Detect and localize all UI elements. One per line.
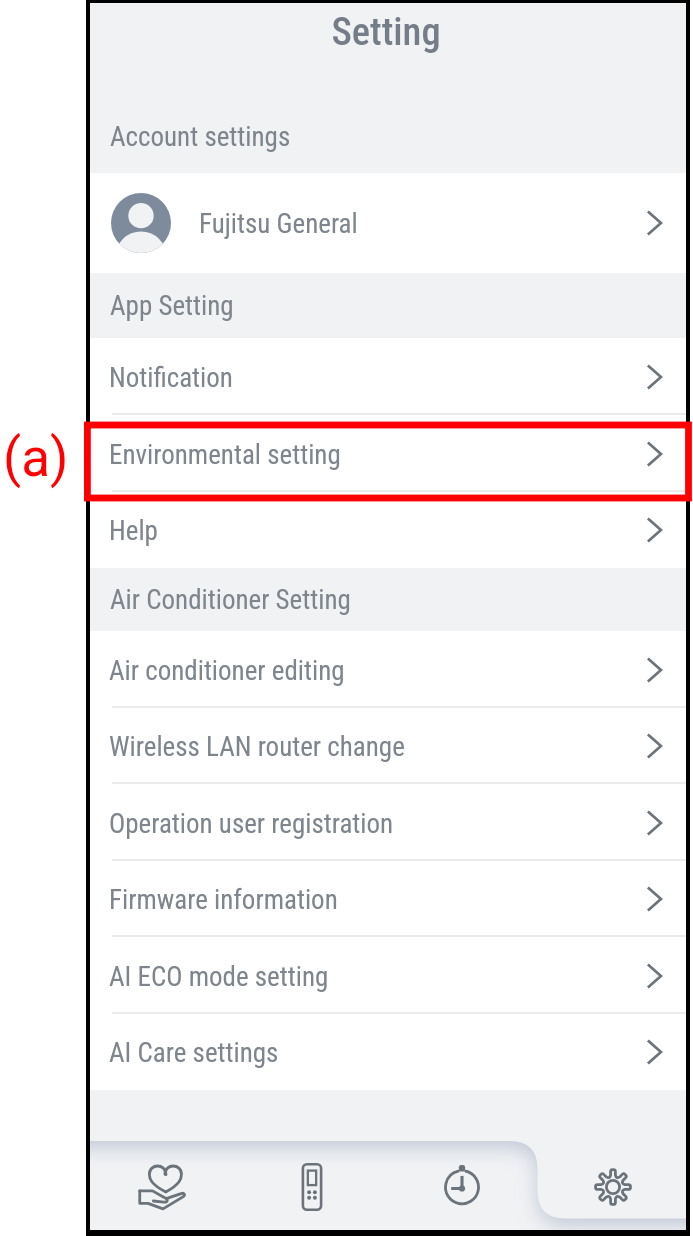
staticText: Firmware information <box>109 884 338 916</box>
button[interactable]: Notification <box>90 338 686 415</box>
staticText: Notification <box>109 362 233 394</box>
button[interactable]: Remote control <box>239 1141 388 1230</box>
button[interactable]: Fujitsu General <box>90 173 686 273</box>
staticText: Wireless LAN router change <box>109 731 405 763</box>
button[interactable]: Air conditioner editing <box>90 631 686 708</box>
button[interactable]: Firmware information <box>90 861 686 937</box>
button[interactable]: Wireless LAN router change <box>90 708 686 784</box>
staticText: AI Care settings <box>109 1037 279 1069</box>
staticText: Help <box>109 515 158 547</box>
staticText: Environmental setting <box>109 439 341 471</box>
button[interactable]: Help <box>90 492 686 568</box>
button[interactable]: AI Care settings <box>90 1014 686 1090</box>
staticText: AI ECO mode setting <box>109 961 329 993</box>
staticText: Air conditioner editing <box>109 655 345 687</box>
button[interactable]: AI ECO mode setting <box>90 937 686 1014</box>
button[interactable]: Operation user registration <box>90 784 686 861</box>
button[interactable]: Environmental setting <box>90 415 686 492</box>
staticText: Operation user registration <box>109 808 394 840</box>
button[interactable]: Timer <box>388 1141 537 1230</box>
staticText: App Setting <box>110 290 234 322</box>
staticText: Air Conditioner Setting <box>110 584 351 616</box>
button[interactable]: Favorites <box>90 1141 239 1230</box>
staticText: Account settings <box>110 121 291 153</box>
staticText: (a) <box>3 427 69 489</box>
staticText: Setting <box>331 9 441 54</box>
button[interactable]: Settings <box>537 1141 686 1230</box>
staticText: Fujitsu General <box>199 208 358 240</box>
